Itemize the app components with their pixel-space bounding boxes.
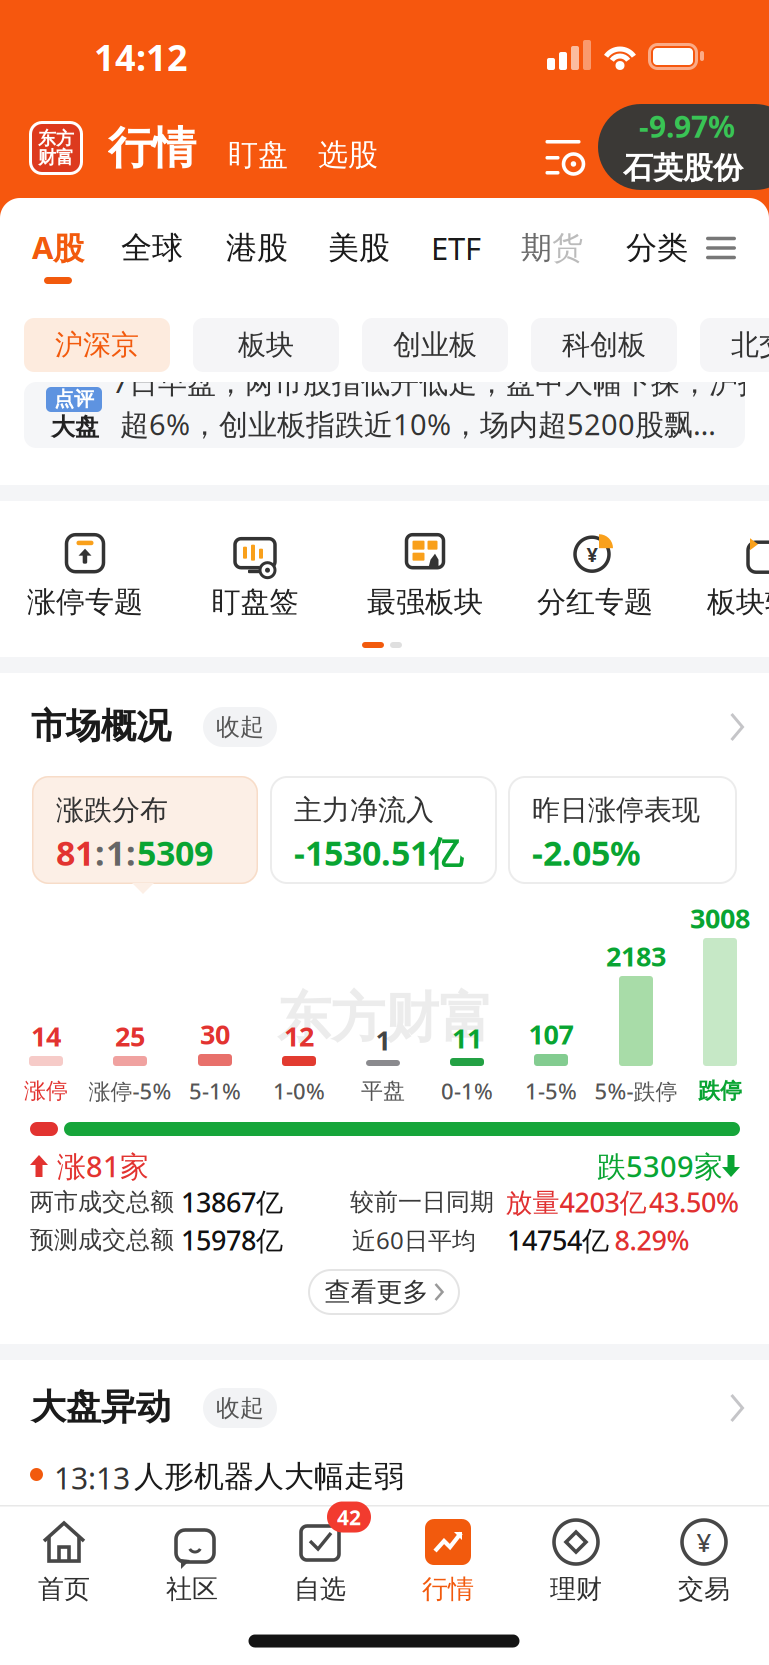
button[interactable]: 13:13 — [30, 1458, 750, 1498]
staticText: 创业板 — [393, 328, 477, 362]
staticText: 12 — [284, 1018, 314, 1054]
staticText: 7日早盘，两市股指低开低走，盘中大幅下探，沪指跌 — [112, 363, 769, 401]
staticText: 大盘 — [51, 412, 99, 442]
button[interactable]: A股 — [32, 226, 84, 268]
staticText: 11 — [452, 1020, 482, 1056]
button[interactable]: 涨跌分布 — [32, 776, 258, 884]
staticText: 1 — [375, 1022, 390, 1058]
staticText: : — [126, 830, 136, 875]
button[interactable]: 盯盘签 — [211, 534, 298, 620]
staticText: 14 — [31, 1018, 61, 1054]
button[interactable]: 查看更多 — [308, 1269, 460, 1315]
button[interactable]: 港股 — [226, 229, 288, 267]
staticText: 13:13 — [54, 1458, 130, 1498]
button[interactable]: 美股 — [328, 229, 390, 267]
staticText: 点评 — [54, 387, 94, 411]
button[interactable]: 板块 — [193, 318, 339, 372]
staticText: 行情 — [422, 1573, 474, 1605]
button[interactable]: ¥ — [537, 534, 653, 620]
button[interactable]: 收起 — [203, 707, 277, 747]
button[interactable]: 查看大盘异动 — [730, 1394, 743, 1422]
staticText: 25 — [115, 1018, 145, 1054]
staticText: 石英股份 — [623, 150, 743, 186]
staticText: 5%-跌停 — [594, 1076, 677, 1106]
staticText: A股 — [32, 226, 84, 268]
staticText: 期 — [521, 229, 552, 267]
staticText: 5309 — [137, 830, 213, 875]
staticText: 昨日涨停表现 — [532, 793, 700, 827]
button[interactable]: 更多栏目 — [706, 237, 736, 259]
staticText: 1 — [106, 830, 125, 875]
staticText: 主力净流入 — [294, 793, 434, 827]
button[interactable]: 行情 — [422, 1519, 474, 1605]
button[interactable]: 分类 — [626, 229, 688, 267]
staticText: : — [95, 830, 105, 875]
button[interactable]: 昨日涨停表现 — [508, 776, 737, 884]
staticText: 财富 — [38, 146, 74, 169]
button[interactable]: 主力净流入 — [270, 776, 497, 884]
staticText: 大盘异动 — [31, 1385, 171, 1428]
button[interactable]: 期 — [521, 229, 583, 267]
button[interactable]: 首页 — [38, 1519, 90, 1605]
staticText: 社区 — [166, 1573, 218, 1605]
button[interactable]: 选股 — [318, 137, 378, 173]
staticText: 理财 — [550, 1573, 602, 1605]
button[interactable]: 北交所 — [700, 318, 769, 372]
button[interactable]: 科创板 — [531, 318, 677, 372]
staticText: -1530.51亿 — [294, 830, 463, 875]
staticText: 43.50% — [649, 1184, 739, 1220]
staticText: 涨停 — [24, 1077, 68, 1104]
staticText: 30 — [200, 1016, 230, 1052]
button[interactable]: 盯盘设置 — [543, 129, 583, 167]
staticText: 市场概况 — [31, 704, 171, 747]
staticText: 人形机器人大幅走弱 — [134, 1458, 404, 1495]
staticText: 东方 — [38, 127, 74, 149]
button[interactable]: 板块轮动 — [707, 534, 769, 620]
staticText: 超6%，创业板指跌近10%，场内超5200股飘… — [120, 405, 716, 443]
staticText: 跌5309家 — [597, 1147, 723, 1185]
staticText: 跌停 — [698, 1077, 742, 1104]
button[interactable]: 涨停专题 — [27, 534, 143, 620]
button[interactable]: 点评 — [24, 382, 745, 448]
button[interactable]: 盯盘 — [228, 137, 288, 173]
staticText: 8.29% — [614, 1222, 689, 1258]
staticText: 选股 — [318, 137, 378, 173]
button[interactable]: 自选 — [294, 1519, 346, 1605]
button[interactable]: -9.97% — [598, 104, 769, 190]
staticText: 5-1% — [189, 1076, 241, 1106]
staticText: 分红专题 — [537, 584, 653, 620]
staticText: 盯盘签 — [211, 584, 298, 620]
staticText: 14754亿 — [507, 1222, 609, 1258]
button[interactable]: 最强板块 — [367, 534, 483, 620]
staticText: 涨跌分布 — [56, 793, 168, 827]
staticText: 涨81家 — [57, 1147, 149, 1185]
staticText: 全球 — [121, 229, 183, 267]
button[interactable]: 创业板 — [362, 318, 508, 372]
button[interactable]: 沪深京 — [24, 318, 170, 372]
button[interactable]: 查看市场概况 — [730, 713, 743, 741]
staticText: 2183 — [606, 938, 666, 974]
button[interactable]: ETF — [431, 227, 481, 269]
staticText: 涨停专题 — [27, 584, 143, 620]
staticText: 东方财富 — [277, 985, 493, 1051]
staticText: 15978亿 — [181, 1222, 283, 1258]
staticText: 平盘 — [361, 1077, 405, 1104]
staticText: ¥ — [696, 1525, 711, 1559]
staticText: 42 — [337, 1503, 361, 1531]
staticText: 预测成交总额 — [30, 1225, 174, 1255]
staticText: 科创板 — [562, 328, 646, 362]
staticText: -9.97% — [639, 106, 735, 146]
button[interactable]: 社区 — [166, 1519, 218, 1605]
staticText: 查看更多 — [324, 1276, 428, 1308]
button[interactable]: 收起 — [203, 1388, 277, 1428]
staticText: ¥ — [586, 541, 597, 567]
staticText: 近60日平均 — [352, 1224, 476, 1256]
staticText: 自选 — [294, 1573, 346, 1605]
staticText: 沪深京 — [55, 328, 139, 362]
button[interactable]: 理财 — [550, 1519, 602, 1605]
staticText: 两市成交总额 — [30, 1187, 174, 1217]
staticText: 交易 — [678, 1573, 730, 1605]
button[interactable]: ¥ — [678, 1519, 730, 1605]
button[interactable]: 全球 — [121, 229, 183, 267]
staticText: 较前一日同期 — [350, 1187, 494, 1217]
